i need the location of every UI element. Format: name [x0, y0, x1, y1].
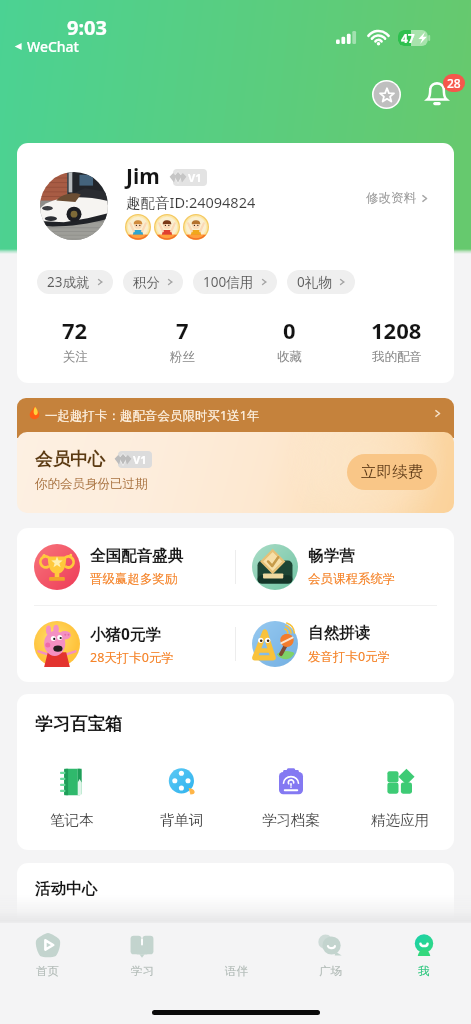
staticText: 会员中心 — [35, 448, 105, 470]
button[interactable]: 学习 — [95, 932, 189, 978]
staticText: 语伴 — [225, 964, 248, 978]
button[interactable]: Notifications — [420, 72, 464, 116]
staticText: 1208 — [371, 315, 422, 345]
staticText: 我的配音 — [372, 349, 422, 365]
button[interactable]: 畅学营 — [235, 528, 454, 605]
staticText: 活动中心 — [35, 879, 97, 899]
staticText: 一起趣打卡：趣配音会员限时买1送1年 — [45, 407, 260, 424]
staticText: 自然拼读 — [308, 623, 370, 643]
button[interactable]: 积分 — [123, 270, 183, 294]
button[interactable]: 1208 — [343, 315, 450, 365]
staticText: 学习档案 — [262, 811, 320, 829]
staticText: 发音打卡0元学 — [308, 648, 391, 665]
staticText: 0礼物 — [297, 273, 332, 291]
staticText: 47 — [401, 30, 415, 46]
staticText: 学习 — [131, 964, 154, 978]
staticText: 会员课程系统学 — [308, 571, 396, 587]
button[interactable]: 修改资料 — [366, 190, 429, 206]
staticText: 9:03 — [67, 14, 107, 41]
staticText: 小猪0元学 — [90, 623, 161, 644]
staticText: 晋级赢超多奖励 — [90, 571, 178, 587]
button[interactable]: 精选应用 — [345, 767, 454, 829]
staticText: 你的会员身份已过期 — [35, 476, 148, 492]
button[interactable]: 一起趣打卡：趣配音会员限时买1送1年 — [17, 398, 454, 438]
button[interactable]: 会员中心 — [17, 432, 454, 513]
staticText: WeChat — [27, 37, 79, 56]
button[interactable]: 0礼物 — [287, 270, 355, 294]
button[interactable]: 广场 — [283, 932, 377, 978]
staticText: 笔记本 — [50, 811, 94, 829]
button[interactable]: 7 — [129, 315, 236, 365]
staticText: 学习百宝箱 — [35, 713, 123, 735]
staticText: 修改资料 — [366, 190, 416, 206]
staticText: Jim — [126, 162, 160, 191]
staticText: 粉丝 — [170, 349, 195, 365]
staticText: 我 — [418, 964, 430, 978]
button[interactable]: 立即续费 — [347, 454, 437, 490]
staticText: 28 — [447, 75, 461, 91]
staticText: 关注 — [63, 349, 88, 365]
button[interactable]: Favorites — [372, 80, 401, 109]
staticText: 广场 — [319, 964, 342, 978]
button[interactable]: 语伴 — [189, 932, 283, 978]
staticText: 72 — [62, 315, 88, 345]
button[interactable]: 小猪0元学 — [17, 606, 235, 682]
staticText: 7 — [176, 315, 189, 345]
staticText: 精选应用 — [371, 811, 429, 829]
staticText: 全国配音盛典 — [90, 546, 183, 566]
staticText: 趣配音ID:24094824 — [126, 192, 256, 212]
button[interactable]: 我 — [377, 932, 471, 978]
staticText: 28天打卡0元学 — [90, 649, 174, 666]
button[interactable]: 0 — [236, 315, 343, 365]
staticText: 积分 — [133, 274, 160, 291]
staticText: V1 — [133, 452, 147, 467]
button[interactable]: Avatar — [40, 172, 108, 240]
button[interactable]: 100信用 — [193, 270, 277, 294]
button[interactable]: 首页 — [0, 932, 95, 978]
staticText: 畅学营 — [308, 546, 355, 566]
button[interactable]: 全国配音盛典 — [17, 528, 235, 605]
staticText: 0 — [283, 315, 296, 345]
staticText: 首页 — [36, 964, 59, 978]
staticText: V1 — [188, 170, 202, 185]
button[interactable]: 23成就 — [37, 270, 113, 294]
staticText: 100信用 — [203, 273, 254, 291]
button[interactable]: 笔记本 — [17, 767, 127, 829]
button[interactable]: 背单词 — [127, 767, 236, 829]
staticText: 收藏 — [277, 349, 302, 365]
staticText: 立即续费 — [361, 462, 423, 482]
staticText: 背单词 — [160, 811, 204, 829]
button[interactable]: 学习档案 — [236, 767, 345, 829]
button[interactable]: 自然拼读 — [235, 606, 454, 682]
button[interactable]: 72 — [21, 315, 129, 365]
staticText: 23成就 — [47, 273, 90, 291]
